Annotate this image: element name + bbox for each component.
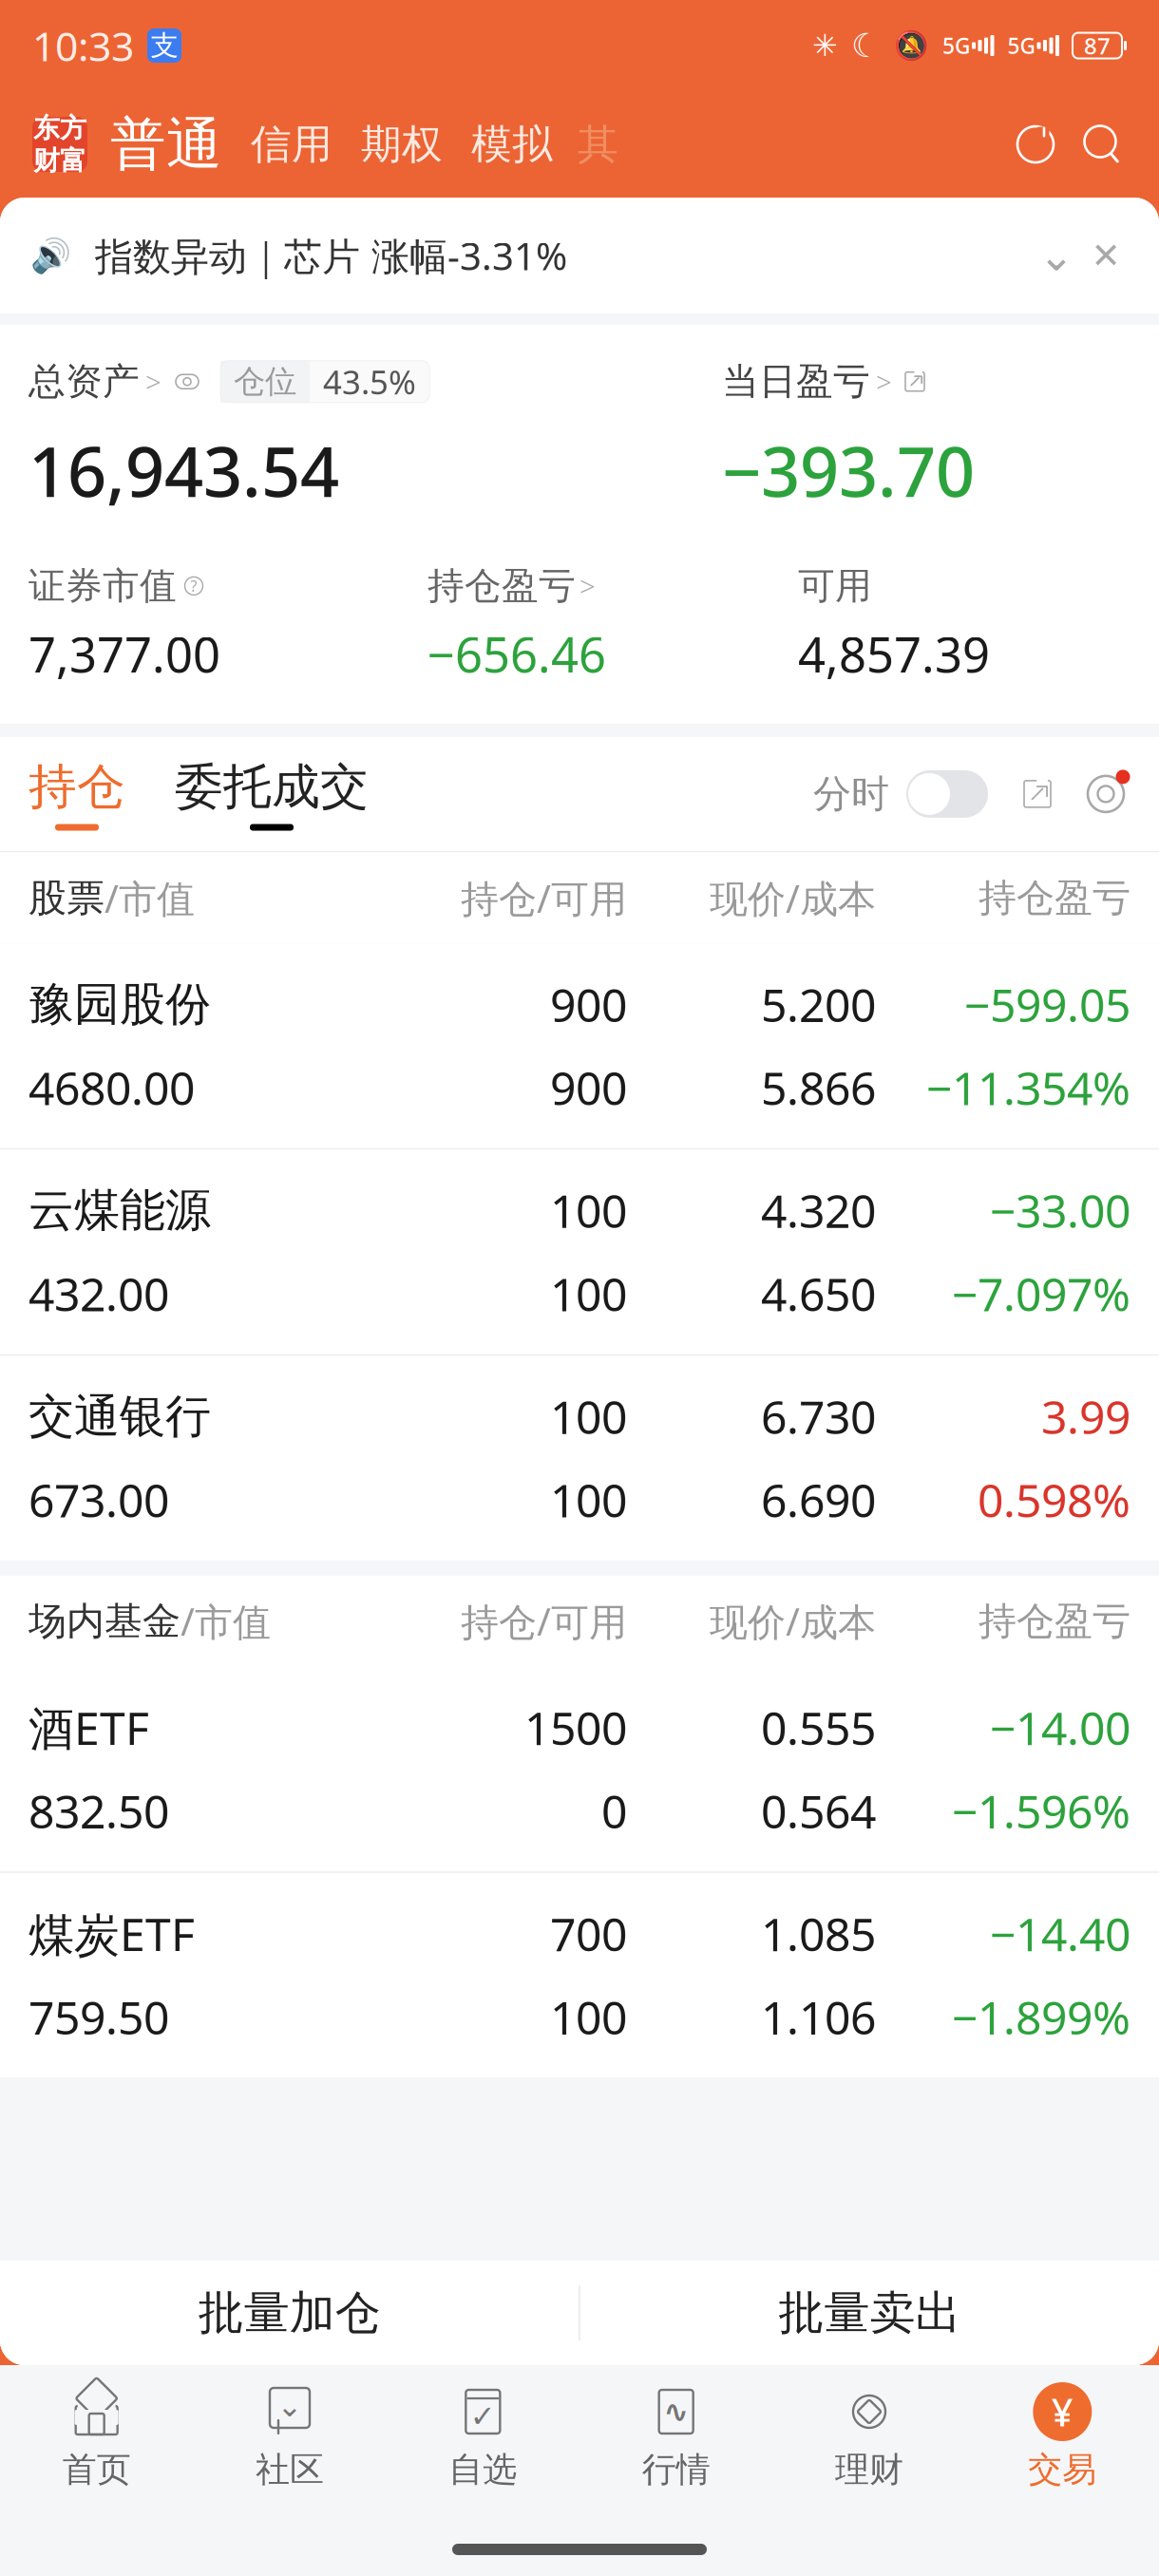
button[interactable]: 持仓盈亏 bbox=[427, 563, 798, 686]
staticText: 其 bbox=[578, 119, 618, 169]
staticText: 证券市值 bbox=[28, 563, 177, 608]
staticText: 支 bbox=[151, 28, 178, 63]
staticText: 持仓/可用 bbox=[461, 873, 627, 923]
staticText: 交通银行 bbox=[28, 1388, 211, 1444]
staticText: ☾ bbox=[851, 27, 881, 64]
staticText: ✕ bbox=[1091, 235, 1121, 276]
staticText: 可用 bbox=[798, 563, 872, 608]
button[interactable]: ¥ bbox=[966, 2386, 1159, 2491]
staticText: 信用 bbox=[251, 119, 332, 169]
button[interactable]: 设置 bbox=[1053, 769, 1130, 819]
staticText: 批量加仓 bbox=[198, 2285, 381, 2341]
staticText: 100 bbox=[550, 1263, 627, 1324]
staticText: 🔊 bbox=[30, 237, 71, 274]
staticText: 财富 bbox=[33, 144, 86, 177]
staticText: 股票 bbox=[28, 875, 104, 921]
button[interactable]: 展开 bbox=[1032, 231, 1081, 280]
staticText: 5.200 bbox=[761, 974, 876, 1034]
staticText: 3.99 bbox=[1041, 1386, 1130, 1447]
staticText: −599.05 bbox=[964, 974, 1130, 1034]
staticText: 759.50 bbox=[28, 1987, 169, 2047]
button[interactable]: 东方财富 bbox=[32, 117, 87, 172]
staticText: 16,943.54 bbox=[28, 425, 339, 516]
staticText: 700 bbox=[550, 1903, 627, 1964]
staticText: 批量卖出 bbox=[778, 2285, 961, 2341]
button[interactable]: 豫园股份 bbox=[0, 944, 1159, 1148]
staticText: 1.106 bbox=[761, 1987, 876, 2047]
staticText: 100 bbox=[550, 1987, 627, 2047]
staticText: > bbox=[876, 363, 892, 400]
staticText: 0.598% bbox=[978, 1470, 1130, 1530]
staticText: 社区 bbox=[256, 2449, 324, 2491]
staticText: ? bbox=[190, 576, 197, 596]
staticText: 4.320 bbox=[761, 1180, 876, 1241]
button[interactable]: 批量加仓 bbox=[0, 2261, 579, 2365]
staticText: 普通 bbox=[110, 110, 222, 179]
button[interactable]: 委托成交 bbox=[125, 757, 369, 831]
staticText: 期权 bbox=[361, 119, 443, 169]
staticText: −14.00 bbox=[990, 1697, 1130, 1758]
staticText: 云煤能源 bbox=[28, 1182, 211, 1238]
staticText: 场内基金 bbox=[28, 1598, 180, 1645]
staticText: ∿ bbox=[663, 2394, 689, 2429]
staticText: 673.00 bbox=[28, 1470, 169, 1530]
button[interactable]: 首页 bbox=[0, 2386, 193, 2491]
staticText: 交易 bbox=[1028, 2449, 1097, 2491]
button[interactable]: 酒ETF bbox=[0, 1667, 1159, 1871]
button[interactable]: ✓ bbox=[386, 2386, 579, 2491]
staticText: 5G bbox=[942, 31, 970, 60]
staticText: 5.866 bbox=[761, 1057, 876, 1118]
staticText: 4680.00 bbox=[28, 1057, 195, 1118]
staticText: > bbox=[579, 567, 596, 604]
button[interactable]: 云煤能源 bbox=[0, 1150, 1159, 1354]
staticText: 0 bbox=[601, 1781, 627, 1841]
staticText: 43.5% bbox=[323, 360, 416, 403]
staticText: 5G bbox=[1007, 31, 1035, 60]
button[interactable]: 普通 bbox=[87, 110, 222, 179]
staticText: 832.50 bbox=[28, 1781, 169, 1841]
button[interactable]: 分时开关 bbox=[889, 768, 990, 820]
staticText: /市值 bbox=[104, 873, 195, 923]
staticText: 🔕 bbox=[894, 30, 929, 61]
button[interactable]: ⌄ bbox=[193, 2386, 386, 2491]
button[interactable]: 分享 bbox=[990, 779, 1053, 809]
staticText: 持仓盈亏 bbox=[978, 875, 1130, 921]
button[interactable]: ∿ bbox=[579, 2386, 773, 2491]
button[interactable]: 煤炭ETF bbox=[0, 1873, 1159, 2078]
staticText: 4.650 bbox=[761, 1263, 876, 1324]
button[interactable]: 批量卖出 bbox=[580, 2261, 1159, 2365]
staticText: 持仓/可用 bbox=[461, 1596, 627, 1646]
staticText: 持仓 bbox=[28, 757, 125, 816]
staticText: ✳ bbox=[812, 28, 838, 63]
staticText: 1500 bbox=[524, 1697, 627, 1758]
button[interactable]: 刷新 bbox=[1011, 120, 1060, 169]
staticText: ¥ bbox=[1051, 2386, 1073, 2437]
staticText: 分时 bbox=[813, 771, 889, 817]
staticText: ✓ bbox=[470, 2399, 496, 2434]
button[interactable]: 期权 bbox=[332, 119, 443, 169]
staticText: −11.354% bbox=[926, 1057, 1130, 1118]
button[interactable]: 模拟 bbox=[443, 119, 553, 169]
staticText: 模拟 bbox=[471, 119, 553, 169]
button[interactable]: 交通银行 bbox=[0, 1356, 1159, 1561]
staticText: /市值 bbox=[180, 1596, 271, 1646]
button[interactable]: 总资产 bbox=[28, 359, 199, 404]
staticText: 现价/成本 bbox=[710, 873, 876, 923]
button[interactable]: 搜索 bbox=[1060, 120, 1127, 169]
button[interactable]: 更多 bbox=[553, 119, 618, 169]
button[interactable]: 仓位 bbox=[199, 361, 429, 402]
staticText: 87 bbox=[1084, 30, 1111, 61]
staticText: 豫园股份 bbox=[28, 976, 211, 1032]
staticText: 自选 bbox=[449, 2449, 517, 2491]
button[interactable]: 理财 bbox=[773, 2386, 966, 2491]
staticText: > bbox=[145, 363, 161, 400]
staticText: 总资产 bbox=[28, 359, 140, 404]
staticText: 理财 bbox=[835, 2449, 903, 2491]
button[interactable]: 信用 bbox=[222, 119, 332, 169]
button[interactable]: 当日盈亏 bbox=[722, 359, 926, 404]
button[interactable]: 持仓 bbox=[28, 757, 125, 831]
staticText: 现价/成本 bbox=[710, 1596, 876, 1646]
button[interactable]: 关闭 bbox=[1081, 231, 1130, 280]
staticText: 委托成交 bbox=[175, 757, 369, 816]
staticText: −7.097% bbox=[952, 1263, 1130, 1324]
